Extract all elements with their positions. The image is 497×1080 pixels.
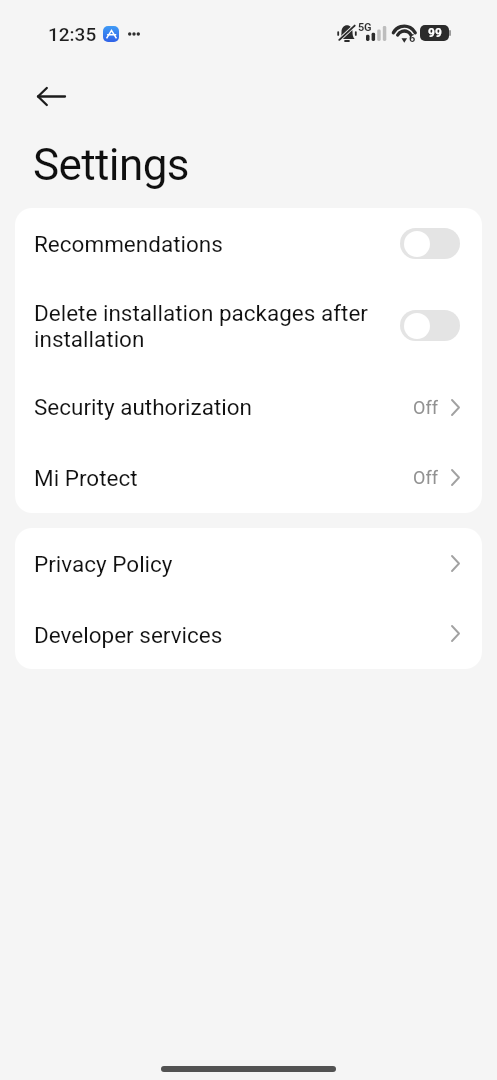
staticText: 5G (358, 21, 372, 34)
button[interactable]: Developer services (15, 598, 482, 669)
button[interactable]: Security authorization (15, 373, 482, 442)
staticText: Privacy Policy (34, 551, 451, 577)
staticText: Mi Protect (34, 465, 413, 491)
button[interactable]: Toggle Recommendations (400, 228, 460, 259)
button[interactable]: Privacy Policy (15, 528, 482, 598)
staticText: Security authorization (34, 394, 413, 420)
staticText: Recommendations (34, 231, 378, 257)
staticText: 12:35 (48, 23, 97, 45)
button[interactable]: Recommendations (15, 208, 482, 278)
button[interactable]: Delete installation packages after insta… (15, 278, 482, 373)
staticText: Off (413, 467, 438, 488)
button[interactable]: Toggle Delete installation packages afte… (400, 310, 460, 341)
staticText: Developer services (34, 622, 451, 648)
staticText: Off (413, 397, 438, 418)
staticText: 99 (428, 26, 442, 40)
staticText: Delete installation packages after insta… (34, 300, 378, 353)
button[interactable]: Back (29, 74, 73, 118)
staticText: Settings (33, 139, 189, 191)
button[interactable]: Mi Protect (15, 442, 482, 513)
staticText: 6 (409, 32, 416, 45)
